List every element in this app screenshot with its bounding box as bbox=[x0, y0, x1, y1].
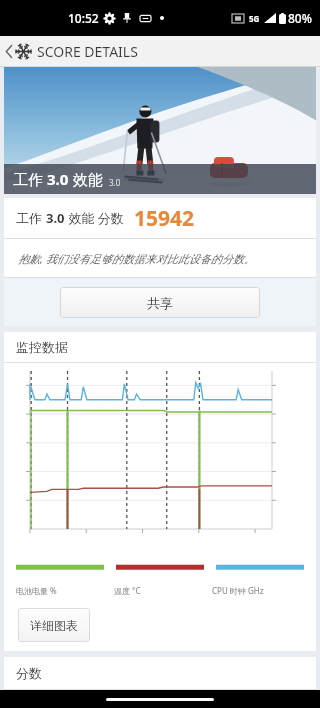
staticText: 电池电量 % bbox=[16, 585, 57, 596]
staticText: SCORE DETAILS bbox=[37, 42, 138, 61]
staticText: 15942 bbox=[134, 204, 195, 233]
staticText: 工作 bbox=[16, 209, 46, 227]
staticText: 抱歉, 我们没有足够的数据来对比此设备的分数。 bbox=[18, 251, 255, 266]
staticText: 3.0 bbox=[46, 209, 65, 227]
staticText: CPU 时钟 GHz bbox=[212, 585, 264, 596]
staticText: 共享 bbox=[147, 295, 173, 311]
staticText: 3.0 bbox=[47, 169, 69, 189]
button[interactable]: 共享 bbox=[60, 287, 260, 318]
staticText: 分数 bbox=[16, 665, 42, 681]
staticText: 效能 分数 bbox=[65, 209, 124, 227]
staticText: 监控数据 bbox=[16, 339, 68, 355]
staticText: 详细图表 bbox=[30, 618, 78, 633]
staticText: 效能 bbox=[69, 169, 103, 189]
staticText: 3.0 bbox=[109, 177, 121, 188]
staticText: 工作 bbox=[13, 169, 47, 189]
staticText: 80% bbox=[288, 10, 312, 26]
button[interactable]: 工作 bbox=[4, 67, 316, 194]
button[interactable]: 详细图表 bbox=[18, 608, 90, 642]
button[interactable]: Back bbox=[3, 38, 141, 65]
staticText: 5G bbox=[249, 13, 260, 24]
staticText: 10:52 bbox=[68, 10, 99, 26]
staticText: 温度 °C bbox=[114, 585, 141, 596]
